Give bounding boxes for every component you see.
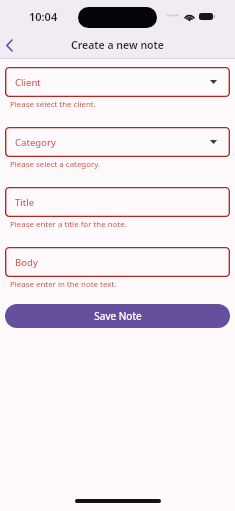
- staticText: Please select a category.: [10, 159, 101, 170]
- staticText: Client: [15, 76, 41, 89]
- button[interactable]: Back: [0, 35, 20, 55]
- staticText: Create a new note: [71, 38, 164, 52]
- staticText: Body: [15, 256, 38, 269]
- staticText: Please select the client.: [10, 99, 96, 110]
- staticText: Please enter a title for the note.: [10, 219, 127, 230]
- button[interactable]: Category: [5, 127, 230, 157]
- staticText: Save Note: [94, 309, 142, 323]
- staticText: 10:04: [29, 9, 58, 24]
- staticText: Category: [15, 136, 56, 149]
- button[interactable]: Save Note: [5, 304, 230, 328]
- staticText: Please enter in the note text.: [10, 279, 117, 290]
- button[interactable]: Client: [5, 67, 230, 97]
- staticText: Title: [15, 196, 35, 209]
- button[interactable]: Body: [5, 247, 230, 277]
- button[interactable]: Title: [5, 187, 230, 217]
